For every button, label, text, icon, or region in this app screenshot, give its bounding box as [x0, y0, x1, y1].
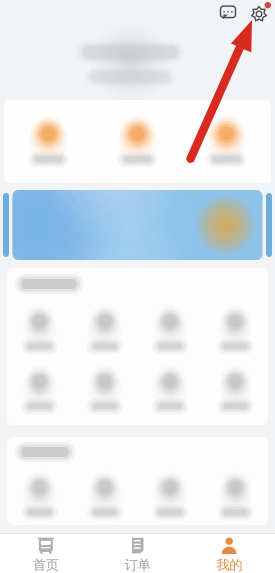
staticText: 订单 — [124, 557, 150, 573]
button[interactable] — [182, 111, 271, 172]
button[interactable]: Settings — [248, 1, 272, 25]
button[interactable]: 我的 — [183, 533, 275, 573]
button[interactable]: Messages — [216, 1, 240, 25]
button[interactable] — [7, 364, 72, 416]
button[interactable] — [7, 304, 72, 356]
button[interactable] — [137, 304, 203, 356]
button[interactable] — [93, 111, 182, 172]
button[interactable] — [203, 304, 268, 356]
button[interactable] — [72, 304, 137, 356]
button[interactable] — [72, 470, 137, 522]
staticText: 首页 — [33, 557, 59, 573]
button[interactable] — [203, 364, 268, 416]
button[interactable] — [137, 364, 203, 416]
button[interactable]: 首页 — [0, 533, 92, 573]
button[interactable]: 订单 — [92, 533, 183, 573]
button[interactable] — [7, 470, 72, 522]
button[interactable] — [4, 111, 93, 172]
button[interactable] — [137, 470, 203, 522]
button[interactable] — [203, 470, 268, 522]
button[interactable] — [72, 364, 137, 416]
staticText: 我的 — [216, 557, 242, 573]
